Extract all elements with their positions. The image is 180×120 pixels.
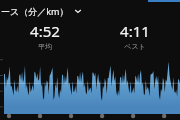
button[interactable]: 4:11 [90,21,180,51]
button[interactable]: ース（分／km） [0,3,180,18]
button[interactable]: 4:52 [0,21,90,51]
staticText: ベスト [124,42,146,51]
button[interactable] [0,55,180,114]
other: Change metric [73,6,83,16]
staticText: ース（分／km） [1,5,69,17]
staticText: 4:11 [120,21,150,41]
staticText: 4:52 [30,21,60,41]
staticText: 平均 [38,42,52,51]
